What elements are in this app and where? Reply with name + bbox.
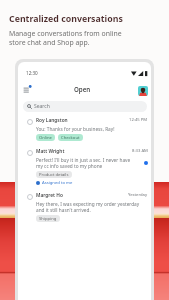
button[interactable]: Menu bbox=[22, 83, 34, 95]
staticText: Roy Langston bbox=[36, 117, 68, 124]
staticText: You: Thanks for your business, Ray! bbox=[36, 126, 115, 132]
staticText: Margret Ho bbox=[36, 192, 63, 199]
staticText: Perfect! I'll buy it in just a sec. I ne… bbox=[36, 157, 131, 163]
button[interactable]: Profile bbox=[138, 86, 148, 96]
staticText: 12:45 PM bbox=[129, 117, 148, 123]
staticText: Search bbox=[34, 103, 50, 110]
button[interactable]: Matt Wright bbox=[18, 148, 151, 186]
staticText: and it still hasn't arrived. bbox=[36, 207, 91, 213]
button[interactable]: Margret Ho bbox=[18, 192, 151, 222]
staticText: Centralized conversations bbox=[9, 13, 123, 25]
staticText: Open bbox=[74, 85, 91, 93]
staticText: Product details bbox=[39, 172, 69, 178]
button[interactable]: Search bbox=[23, 101, 147, 112]
staticText: Hey there, I was expecting my order yest… bbox=[36, 201, 140, 207]
staticText: Shipping bbox=[39, 216, 57, 222]
staticText: Manage conversations from online store c… bbox=[9, 29, 127, 47]
staticText: Assigned to me bbox=[42, 180, 73, 186]
button[interactable]: Roy Langston bbox=[18, 117, 151, 141]
staticText: Yesterday bbox=[128, 192, 148, 198]
staticText: 8:33 AM bbox=[132, 148, 148, 154]
staticText: Matt Wright bbox=[36, 148, 65, 155]
staticText: Online bbox=[39, 135, 52, 141]
staticText: 12:30 bbox=[26, 70, 38, 76]
staticText: Checkout bbox=[61, 135, 80, 141]
staticText: my cc info saved to my phone bbox=[36, 163, 103, 169]
